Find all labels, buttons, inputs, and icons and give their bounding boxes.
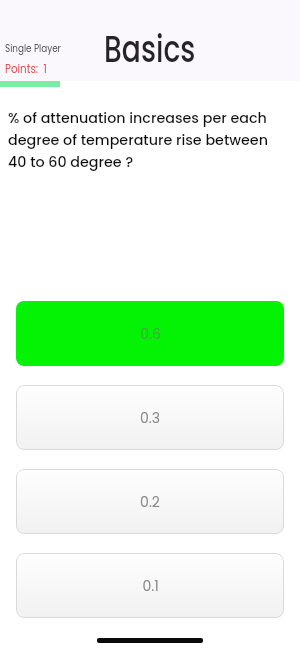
staticText: 0.2 xyxy=(140,492,160,512)
button[interactable]: 0.6 xyxy=(16,301,284,366)
button[interactable]: 0.1 xyxy=(16,553,284,618)
staticText: Basics xyxy=(104,23,195,75)
staticText: % of attenuation increases per each degr… xyxy=(8,108,282,172)
staticText: Points: 1 xyxy=(5,61,48,77)
staticText: 0.1 xyxy=(142,576,159,596)
staticText: Single Player xyxy=(5,42,62,56)
staticText: 0.3 xyxy=(140,408,160,428)
staticText: 0.6 xyxy=(140,324,161,344)
button[interactable]: 0.2 xyxy=(16,469,284,534)
button[interactable]: 0.3 xyxy=(16,385,284,450)
